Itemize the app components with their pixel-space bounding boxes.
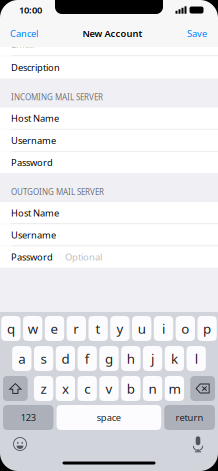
staticText: i — [162, 320, 165, 337]
staticText: New Account — [82, 27, 142, 40]
button[interactable]: q — [1, 316, 20, 341]
staticText: n — [149, 380, 157, 397]
button[interactable]: Emoji keyboard — [0, 435, 29, 453]
staticText: Save — [187, 27, 207, 40]
button[interactable]: space — [57, 405, 161, 430]
button[interactable]: r — [67, 316, 86, 341]
button[interactable]: h — [121, 346, 140, 371]
button[interactable]: Dictation — [189, 435, 218, 453]
button[interactable]: i — [154, 316, 173, 341]
staticText: k — [171, 350, 178, 367]
staticText: Description — [11, 61, 60, 74]
staticText: INCOMING MAIL SERVER — [11, 92, 103, 102]
button[interactable]: Description — [0, 56, 218, 78]
staticText: h — [127, 350, 135, 367]
staticText: w — [28, 320, 38, 337]
button[interactable]: z — [34, 376, 53, 401]
button[interactable]: Password — [0, 152, 218, 173]
staticText: f — [85, 350, 90, 367]
staticText: 123 — [21, 411, 36, 424]
button[interactable]: Delete — [190, 376, 215, 401]
staticText: t — [96, 320, 101, 337]
staticText: m — [168, 380, 180, 397]
button[interactable]: y — [110, 316, 129, 341]
button[interactable]: a — [12, 346, 31, 371]
button[interactable]: d — [56, 346, 75, 371]
button[interactable]: v — [99, 376, 119, 401]
staticText: o — [181, 320, 189, 337]
staticText: s — [41, 350, 47, 367]
staticText: 10:00 — [19, 4, 42, 16]
button[interactable]: x — [56, 376, 75, 401]
staticText: v — [105, 380, 112, 397]
button[interactable]: j — [143, 346, 162, 371]
button[interactable]: t — [88, 316, 108, 341]
staticText: space — [97, 411, 121, 424]
staticText: p — [203, 320, 211, 337]
button[interactable]: Save — [187, 23, 218, 44]
staticText: Username — [11, 229, 56, 241]
staticText: Cancel — [10, 27, 38, 40]
staticText: e — [50, 320, 58, 337]
button[interactable]: g — [99, 346, 119, 371]
staticText: l — [195, 350, 198, 367]
staticText: b — [127, 380, 135, 397]
button[interactable]: k — [165, 346, 184, 371]
button[interactable]: Host Name — [0, 202, 218, 223]
button[interactable]: l — [187, 346, 206, 371]
staticText: u — [138, 320, 146, 337]
staticText: Password — [11, 156, 53, 169]
staticText: c — [84, 380, 90, 397]
button[interactable]: s — [34, 346, 53, 371]
staticText: g — [105, 350, 113, 367]
button[interactable]: m — [165, 376, 184, 401]
staticText: Email — [11, 38, 34, 50]
staticText: Host Name — [11, 207, 59, 219]
button[interactable]: b — [121, 376, 140, 401]
button[interactable]: Host Name — [0, 107, 218, 129]
staticText: Optional — [65, 251, 102, 263]
staticText: y — [116, 320, 123, 337]
button[interactable]: Cancel — [0, 23, 38, 44]
staticText: z — [41, 380, 47, 397]
staticText: Host Name — [11, 112, 59, 124]
staticText: OUTGOING MAIL SERVER — [11, 186, 104, 197]
staticText: r — [73, 320, 79, 337]
staticText: x — [62, 380, 69, 397]
staticText: a — [18, 350, 25, 367]
button[interactable]: o — [176, 316, 195, 341]
button[interactable]: return — [164, 405, 215, 430]
button[interactable]: p — [197, 316, 217, 341]
button[interactable]: Username — [0, 224, 218, 246]
staticText: Password — [11, 251, 53, 263]
button[interactable]: Password — [0, 246, 218, 268]
button[interactable]: u — [132, 316, 151, 341]
button[interactable]: n — [143, 376, 162, 401]
button[interactable]: Username — [0, 130, 218, 151]
button[interactable]: e — [45, 316, 64, 341]
staticText: j — [151, 350, 154, 367]
button[interactable]: f — [77, 346, 97, 371]
button[interactable]: w — [23, 316, 42, 341]
staticText: return — [176, 411, 204, 424]
button[interactable]: Shift — [3, 376, 28, 401]
staticText: Username — [11, 134, 56, 146]
staticText: d — [61, 350, 69, 367]
staticText: q — [7, 320, 15, 337]
button[interactable]: c — [78, 376, 97, 401]
button[interactable]: 123 — [3, 405, 53, 430]
